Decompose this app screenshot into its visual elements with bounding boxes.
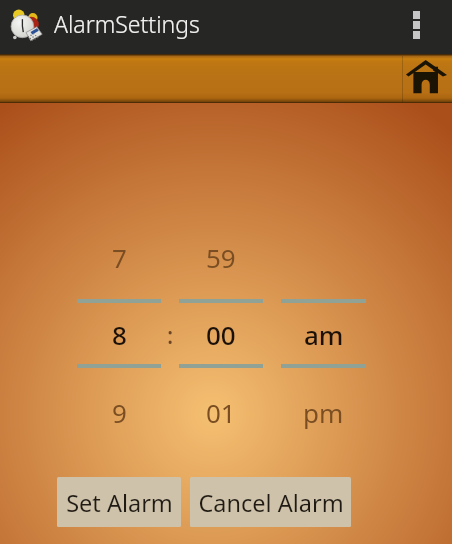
staticText: 01: [206, 395, 236, 430]
button[interactable]: Home: [400, 54, 452, 103]
staticText: Set Alarm: [66, 487, 173, 519]
staticText: 8: [112, 317, 127, 352]
staticText: 00: [206, 317, 236, 352]
staticText: 7: [112, 240, 127, 275]
button[interactable]: Cancel Alarm: [190, 477, 351, 527]
staticText: 9: [112, 395, 127, 430]
staticText: am: [304, 317, 344, 352]
staticText: 59: [206, 240, 236, 275]
staticText: AlarmSettings: [54, 8, 200, 39]
button[interactable]: More options: [393, 0, 440, 54]
button[interactable]: Set Alarm: [57, 477, 181, 527]
staticText: Cancel Alarm: [198, 487, 344, 519]
staticText: :: [167, 319, 174, 350]
staticText: pm: [303, 395, 344, 430]
